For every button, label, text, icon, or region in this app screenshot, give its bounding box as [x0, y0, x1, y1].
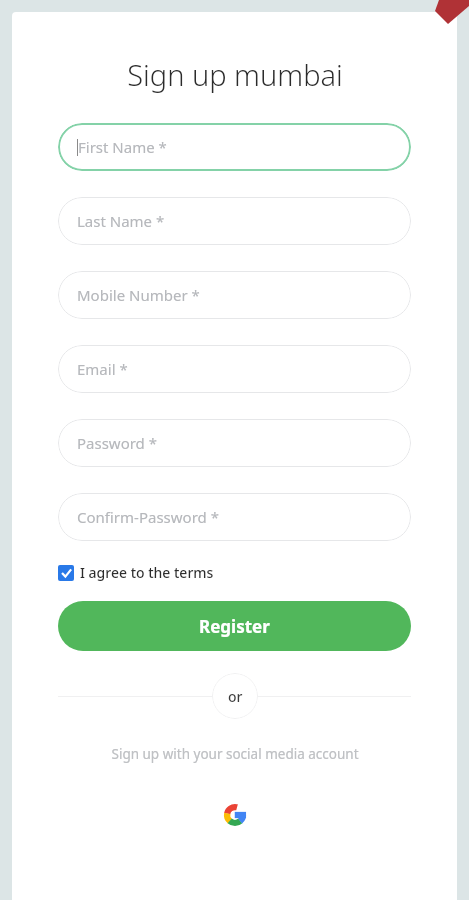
staticText: Sign up mumbai	[127, 55, 343, 94]
button[interactable]: Register	[58, 601, 411, 651]
staticText: Password *	[77, 433, 158, 453]
button[interactable]: Sign up with Google	[209, 789, 261, 841]
button[interactable]: Password *	[58, 419, 411, 467]
button[interactable]: I agree to the terms	[58, 563, 214, 582]
button[interactable]: Confirm-Password *	[58, 493, 411, 541]
button[interactable]: First Name *	[58, 123, 411, 171]
staticText: or	[228, 687, 243, 706]
staticText: First Name *	[78, 137, 167, 157]
button[interactable]: Last Name *	[58, 197, 411, 245]
staticText: Mobile Number *	[77, 285, 200, 305]
staticText: Register	[199, 615, 270, 638]
staticText: Email *	[77, 359, 128, 379]
button[interactable]: Email *	[58, 345, 411, 393]
staticText: Last Name *	[77, 211, 165, 231]
staticText: I agree to the terms	[80, 563, 214, 582]
staticText: Confirm-Password *	[77, 507, 219, 527]
button[interactable]: Mobile Number *	[58, 271, 411, 319]
staticText: Sign up with your social media account	[111, 745, 359, 763]
